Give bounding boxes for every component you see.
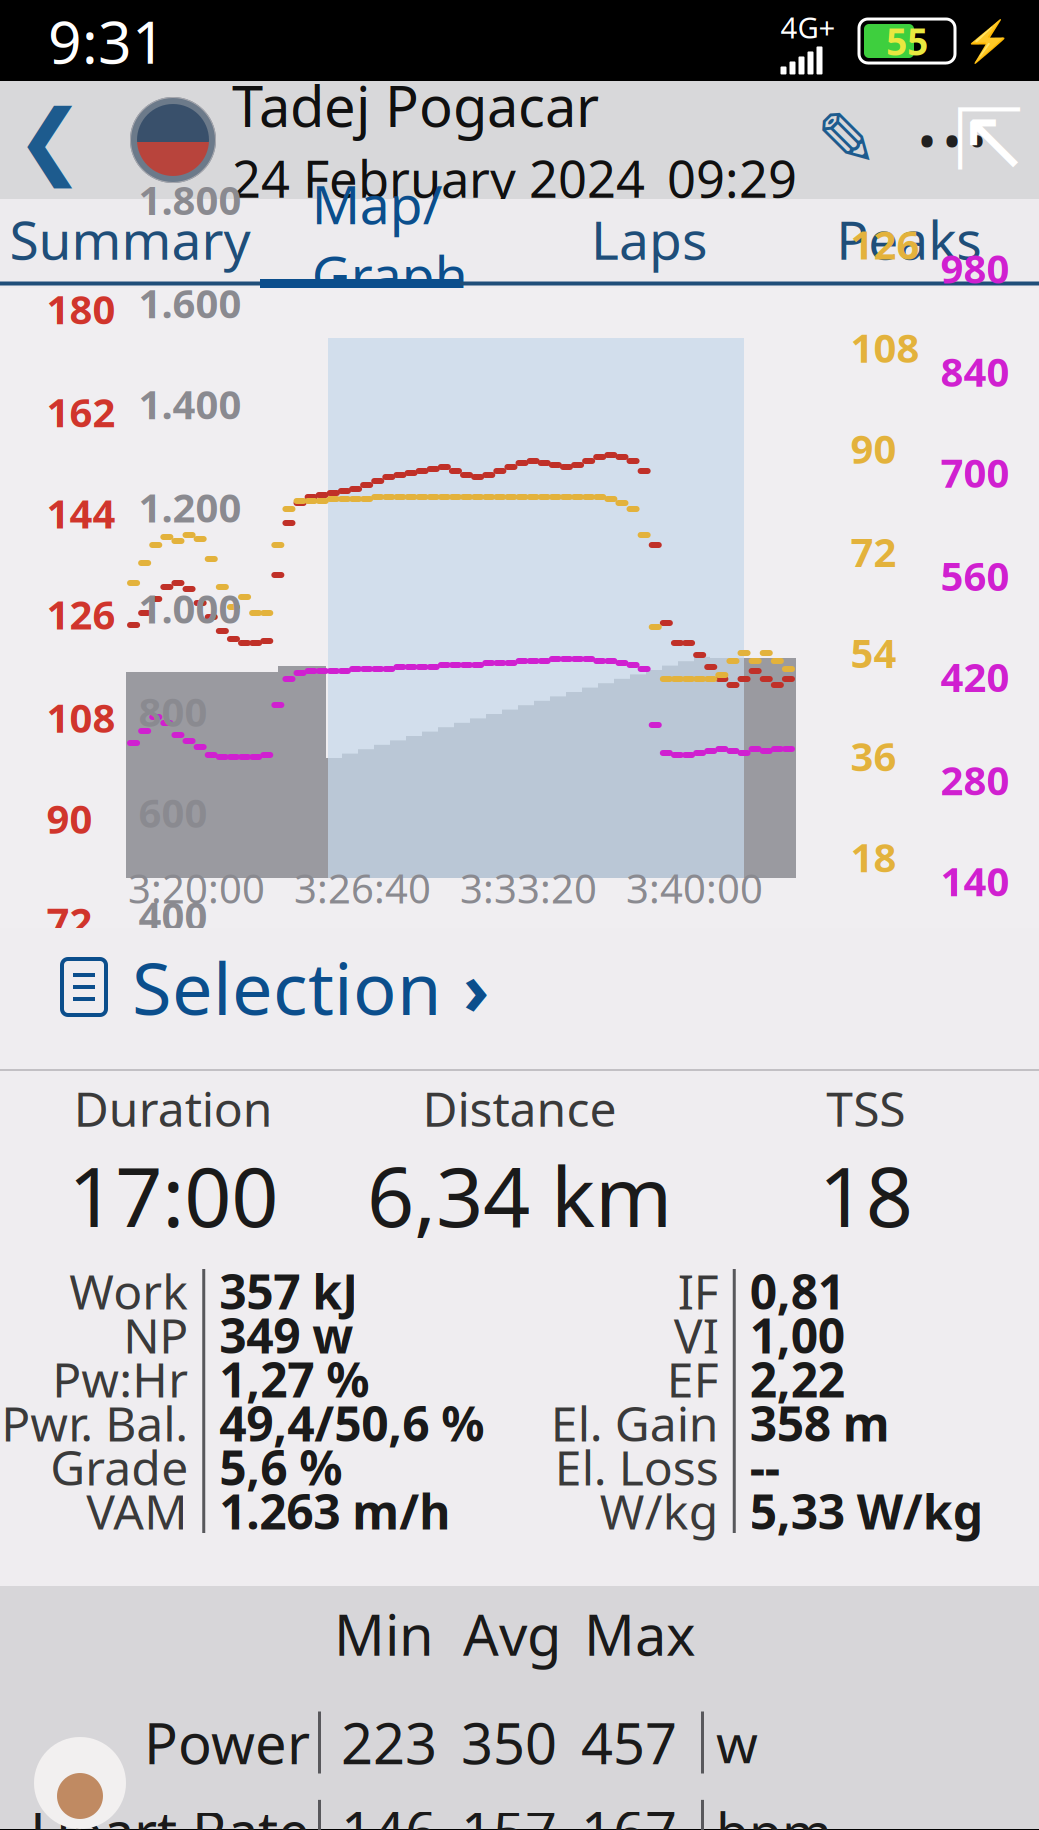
- staticText: Grade: [50, 1435, 188, 1499]
- staticText: 1,27 %: [219, 1347, 369, 1411]
- staticText: 0,81: [750, 1259, 845, 1323]
- staticText: 840: [940, 345, 1009, 398]
- staticText: 223: [341, 1705, 437, 1780]
- button[interactable]: Summary: [0, 199, 260, 279]
- staticText: 167: [581, 1794, 677, 1830]
- staticText: EF: [667, 1347, 719, 1411]
- staticText: ⚡: [963, 18, 1013, 64]
- staticText: 55: [886, 16, 928, 66]
- staticText: 126: [850, 217, 919, 271]
- staticText: Pwr. Bal.: [1, 1391, 188, 1455]
- staticText: 2,22: [750, 1347, 845, 1411]
- staticText: 5,6 %: [219, 1435, 342, 1499]
- staticText: 9:31: [48, 2, 166, 80]
- button[interactable]: Edit: [809, 81, 885, 199]
- staticText: 200: [138, 990, 207, 1043]
- staticText: Tadej Pogacar: [232, 68, 599, 143]
- staticText: 357 kJ: [219, 1259, 358, 1323]
- staticText: Distance: [422, 1076, 616, 1140]
- staticText: VAM: [86, 1479, 188, 1543]
- staticText: 72: [46, 895, 92, 948]
- staticText: 1.000: [138, 581, 241, 634]
- staticText: 72: [850, 525, 896, 578]
- staticText: 980: [940, 241, 1009, 295]
- staticText: Pw:Hr: [52, 1347, 188, 1411]
- staticText: 3:33:20: [460, 861, 597, 914]
- staticText: • • •: [919, 113, 984, 166]
- staticText: Laps: [591, 204, 708, 274]
- staticText: Power: [144, 1705, 310, 1780]
- staticText: VI: [674, 1303, 719, 1367]
- staticText: NP: [123, 1303, 188, 1367]
- staticText: 457: [581, 1705, 677, 1780]
- staticText: 1.600: [138, 276, 241, 329]
- button[interactable]: Laps: [519, 199, 779, 279]
- staticText: 1.263 m/h: [219, 1479, 450, 1543]
- button[interactable]: More options: [885, 81, 1039, 199]
- staticText: 1.800: [138, 173, 241, 226]
- staticText: 157: [461, 1794, 557, 1830]
- staticText: Max: [584, 1597, 696, 1671]
- staticText: TSS: [826, 1076, 905, 1140]
- staticText: ⇱: [953, 92, 1025, 188]
- staticText: El. Gain: [551, 1391, 719, 1455]
- button[interactable]: Map/Graph: [260, 199, 520, 279]
- staticText: 17:00: [68, 1140, 278, 1250]
- staticText: 108: [850, 321, 919, 374]
- staticText: 180: [46, 282, 115, 335]
- staticText: 108: [46, 691, 115, 744]
- staticText: 126: [46, 587, 115, 640]
- staticText: 700: [940, 446, 1009, 499]
- staticText: 400: [138, 889, 207, 942]
- staticText: 800: [138, 685, 207, 738]
- staticText: 36: [850, 729, 896, 782]
- button[interactable]: Back: [0, 81, 100, 199]
- staticText: Duration: [74, 1076, 273, 1140]
- staticText: 3:20:00: [128, 861, 265, 914]
- staticText: Selection: [132, 939, 441, 1035]
- staticText: 1.200: [138, 480, 241, 533]
- staticText: 18: [819, 1140, 913, 1250]
- staticText: 280: [940, 753, 1009, 806]
- staticText: ❮: [15, 93, 84, 187]
- button[interactable]: Peaks: [779, 199, 1039, 279]
- staticText: Peaks: [836, 204, 982, 274]
- staticText: Min: [334, 1597, 434, 1671]
- staticText: 1.400: [138, 377, 241, 430]
- staticText: Summary: [9, 204, 250, 274]
- staticText: 90: [850, 422, 896, 475]
- staticText: ›: [463, 939, 489, 1035]
- staticText: 3:26:40: [294, 861, 431, 914]
- staticText: 5,33 W/kg: [750, 1479, 983, 1543]
- staticText: 140: [940, 854, 1009, 907]
- button[interactable]: Selection: [0, 928, 1039, 1046]
- staticText: 146: [341, 1794, 437, 1830]
- staticText: 4G+: [780, 7, 835, 46]
- staticText: 24 February 2024: [232, 144, 645, 212]
- staticText: 420: [940, 650, 1009, 703]
- staticText: 350: [461, 1705, 557, 1780]
- staticText: 358 m: [750, 1391, 890, 1455]
- staticText: Heart Rate: [30, 1794, 310, 1830]
- staticText: 1,00: [750, 1303, 845, 1367]
- staticText: w: [716, 1707, 758, 1778]
- staticText: 3:40:00: [626, 861, 763, 914]
- staticText: 144: [46, 486, 115, 539]
- staticText: 90: [46, 792, 92, 845]
- staticText: ✎: [815, 98, 878, 182]
- staticText: bpm: [716, 1795, 832, 1830]
- staticText: 18: [850, 830, 896, 883]
- staticText: 49,4/50,6 %: [219, 1391, 484, 1455]
- staticText: 162: [46, 385, 115, 438]
- staticText: W/kg: [600, 1479, 719, 1543]
- staticText: Avg: [463, 1597, 561, 1671]
- staticText: 09:29: [667, 144, 797, 212]
- staticText: IF: [678, 1259, 719, 1323]
- staticText: 560: [940, 549, 1009, 602]
- staticText: Map/Graph: [312, 168, 468, 310]
- staticText: 54: [850, 626, 896, 679]
- staticText: El. Loss: [555, 1435, 719, 1499]
- staticText: 349 w: [219, 1303, 353, 1367]
